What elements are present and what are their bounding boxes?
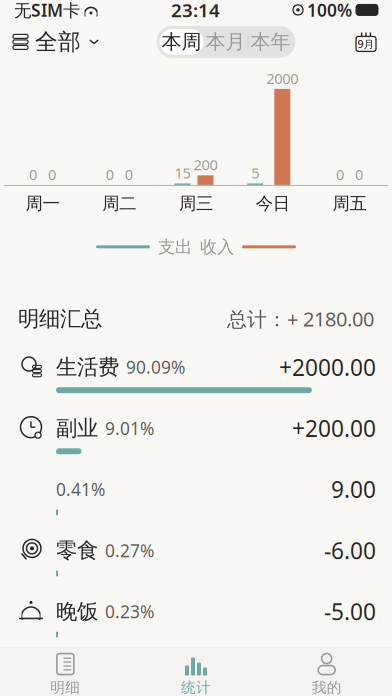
staticText: 明细汇总 [18,306,102,332]
button[interactable]: 统计 [131,647,261,696]
staticText: 0.27% [105,539,154,562]
button[interactable]: 全部 [0,22,112,62]
staticText: 明细 [50,679,80,696]
staticText: 周一 [25,193,59,214]
staticText: +2000.00 [279,352,376,382]
staticText: 0 [48,164,56,184]
staticText: 5 [251,163,259,182]
button[interactable]: 明细 [0,647,131,696]
staticText: 0 [355,164,363,184]
staticText: 收入 [200,236,234,257]
staticText: 周三 [179,193,213,214]
button[interactable]: 我的 [261,647,392,696]
staticText: 9.00 [331,474,376,504]
staticText: 0 [125,164,133,184]
staticText: 全部 [35,28,81,56]
staticText: 本月 [205,30,245,54]
staticText: 晚饭 [56,598,98,625]
staticText: 2000 [266,68,298,88]
button[interactable]: 本月 [203,29,247,55]
button[interactable]: 选择月份 [340,22,392,62]
button[interactable]: 零食 [0,525,392,586]
staticText: 总计：+ 2180.00 [227,305,374,332]
button[interactable]: 生活费 [0,342,392,403]
staticText: 9月 [357,37,374,51]
staticText: 0.41% [56,478,105,501]
staticText: 23:14 [171,0,220,22]
button[interactable]: 0.41% [0,464,392,525]
staticText: -6.00 [324,535,376,565]
staticText: 90.09% [126,356,185,379]
staticText: 15 [174,163,190,182]
staticText: 支出 [158,236,192,257]
button[interactable]: 本年 [248,29,292,55]
staticText: 本周 [161,30,201,54]
staticText: 100% [307,0,352,21]
staticText: 统计 [181,679,211,696]
staticText: 9.01% [105,417,154,440]
staticText: 我的 [312,679,342,696]
staticText: 今日 [256,193,290,214]
staticText: 200 [193,155,217,174]
staticText: 无SIM卡 [14,0,80,21]
staticText: 0 [29,164,37,184]
staticText: 零食 [56,537,98,563]
staticText: -5.00 [324,596,376,627]
staticText: 本年 [250,30,290,54]
staticText: +200.00 [292,413,376,443]
button[interactable]: 本周 [159,29,203,55]
button[interactable]: 副业 [0,403,392,464]
staticText: 0 [106,164,114,184]
staticText: 周五 [333,193,367,214]
staticText: 周二 [102,193,136,214]
staticText: 0 [336,164,344,184]
staticText: 生活费 [56,354,119,380]
staticText: 0.23% [105,600,154,623]
staticText: 副业 [56,415,98,441]
button[interactable]: 晚饭 [0,586,392,648]
